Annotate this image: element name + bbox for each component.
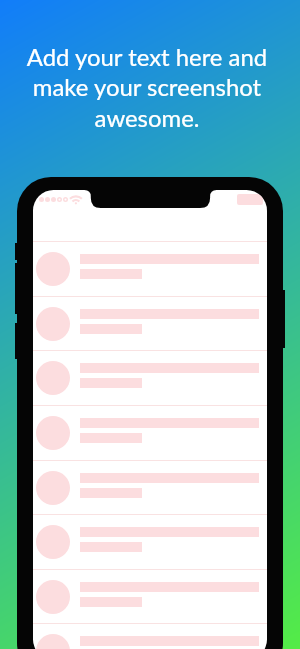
button[interactable] bbox=[33, 623, 267, 649]
button[interactable] bbox=[33, 460, 267, 515]
button[interactable] bbox=[33, 296, 267, 351]
button[interactable] bbox=[33, 350, 267, 405]
button[interactable] bbox=[33, 569, 267, 624]
button[interactable] bbox=[33, 514, 267, 569]
staticText: Add your text here and make your screens… bbox=[9, 42, 285, 132]
button[interactable] bbox=[33, 241, 267, 296]
button[interactable] bbox=[33, 405, 267, 460]
